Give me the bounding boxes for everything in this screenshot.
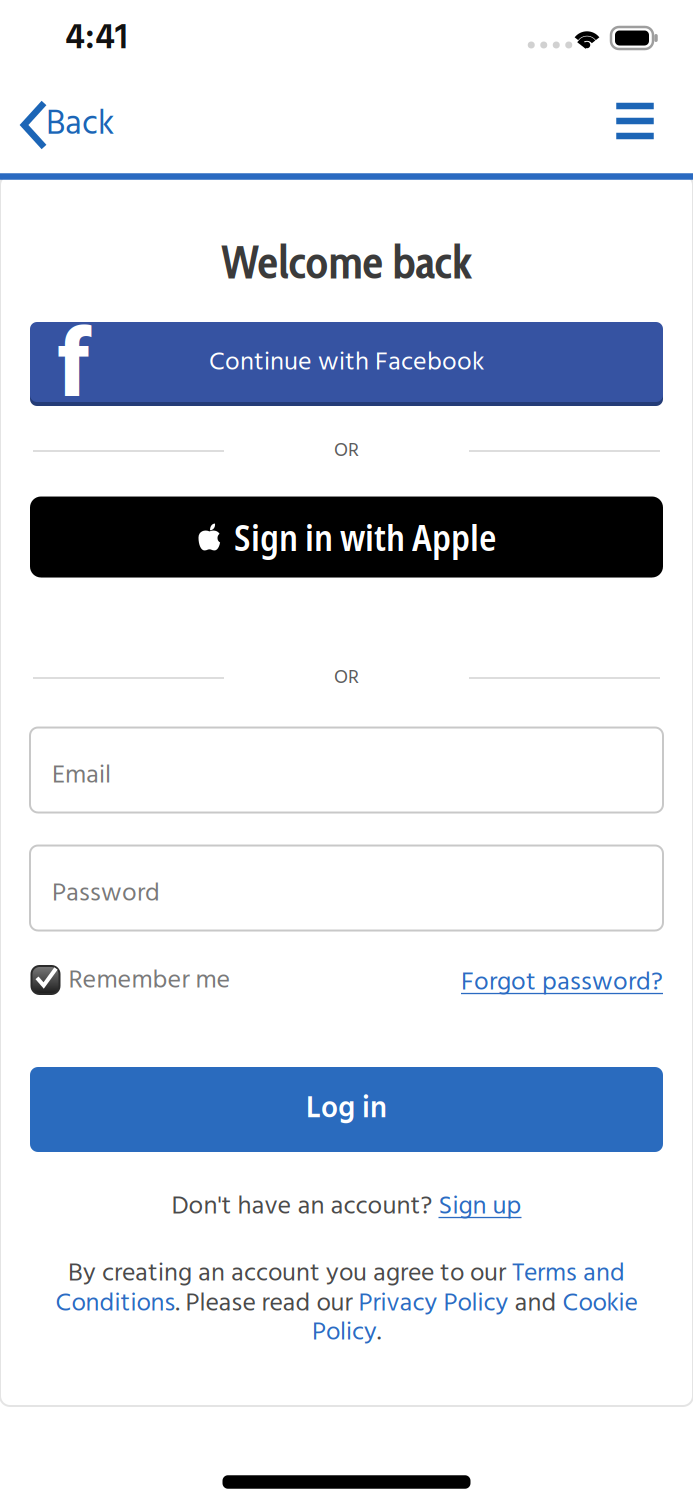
staticText: . Please read our: [175, 1283, 358, 1325]
button[interactable]: Back: [24, 98, 114, 152]
button[interactable]: f: [30, 322, 663, 402]
button[interactable]: Don't have an account?: [171, 1186, 521, 1228]
staticText: and: [508, 1283, 562, 1325]
staticText: Welcome back: [221, 234, 471, 290]
button[interactable]: Email: [30, 727, 663, 812]
staticText: .: [377, 1312, 381, 1354]
staticText: Password: [52, 873, 160, 915]
staticText: Forgot password?: [461, 962, 663, 1004]
staticText: Privacy Policy: [358, 1283, 508, 1325]
staticText: OR: [334, 662, 359, 694]
staticText: 4:41: [65, 10, 128, 68]
staticText: Log in: [306, 1085, 387, 1133]
staticText: Continue with Facebook: [209, 342, 484, 384]
button[interactable]: Sign in with Apple: [30, 496, 663, 577]
button[interactable]: Forgot password?: [461, 962, 663, 1004]
staticText: Terms and: [512, 1253, 625, 1295]
staticText: Sign in with Apple: [234, 512, 496, 561]
staticText: Sign up: [438, 1186, 521, 1228]
staticText: Remember me: [68, 960, 230, 1002]
staticText: Conditions: [55, 1283, 175, 1325]
staticText: Email: [52, 755, 111, 797]
staticText: Don't have an account?: [171, 1186, 438, 1228]
button[interactable]: Remember me: [31, 959, 230, 1001]
staticText: Cookie: [562, 1283, 637, 1325]
staticText: Policy: [312, 1312, 377, 1354]
staticText: Back: [46, 98, 114, 152]
button[interactable]: Menu: [616, 103, 654, 139]
button[interactable]: Log in: [30, 1067, 663, 1152]
staticText: By creating an account you agree to our: [68, 1253, 512, 1295]
button[interactable]: Password: [30, 845, 663, 930]
staticText: OR: [334, 435, 359, 467]
staticText: f: [55, 293, 89, 449]
